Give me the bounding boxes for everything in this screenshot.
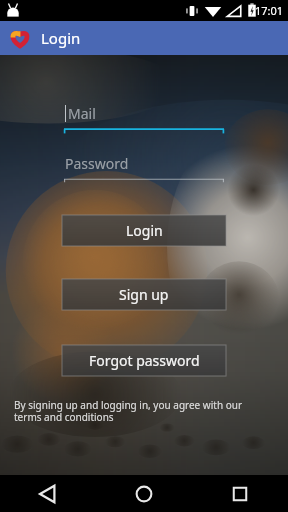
- staticText: Sign up: [119, 285, 169, 304]
- staticText: Forgot password: [89, 351, 200, 370]
- button[interactable]: Forgot password: [62, 345, 226, 376]
- button[interactable]: Login: [62, 215, 226, 246]
- staticText: Mail: [68, 104, 96, 123]
- button[interactable]: Home: [96, 475, 192, 512]
- staticText: Login: [126, 221, 163, 240]
- button[interactable]: Password: [64, 150, 224, 176]
- button[interactable]: Mail: [64, 100, 224, 126]
- button[interactable]: Recent apps: [192, 475, 288, 512]
- button[interactable]: Sign up: [62, 279, 226, 310]
- staticText: Login: [41, 28, 81, 48]
- staticText: 17:01: [255, 3, 284, 18]
- button[interactable]: Back: [0, 475, 96, 512]
- staticText: By signing up and logging in, you agree …: [14, 398, 264, 424]
- other: App logo: [9, 27, 31, 49]
- staticText: Password: [65, 154, 129, 173]
